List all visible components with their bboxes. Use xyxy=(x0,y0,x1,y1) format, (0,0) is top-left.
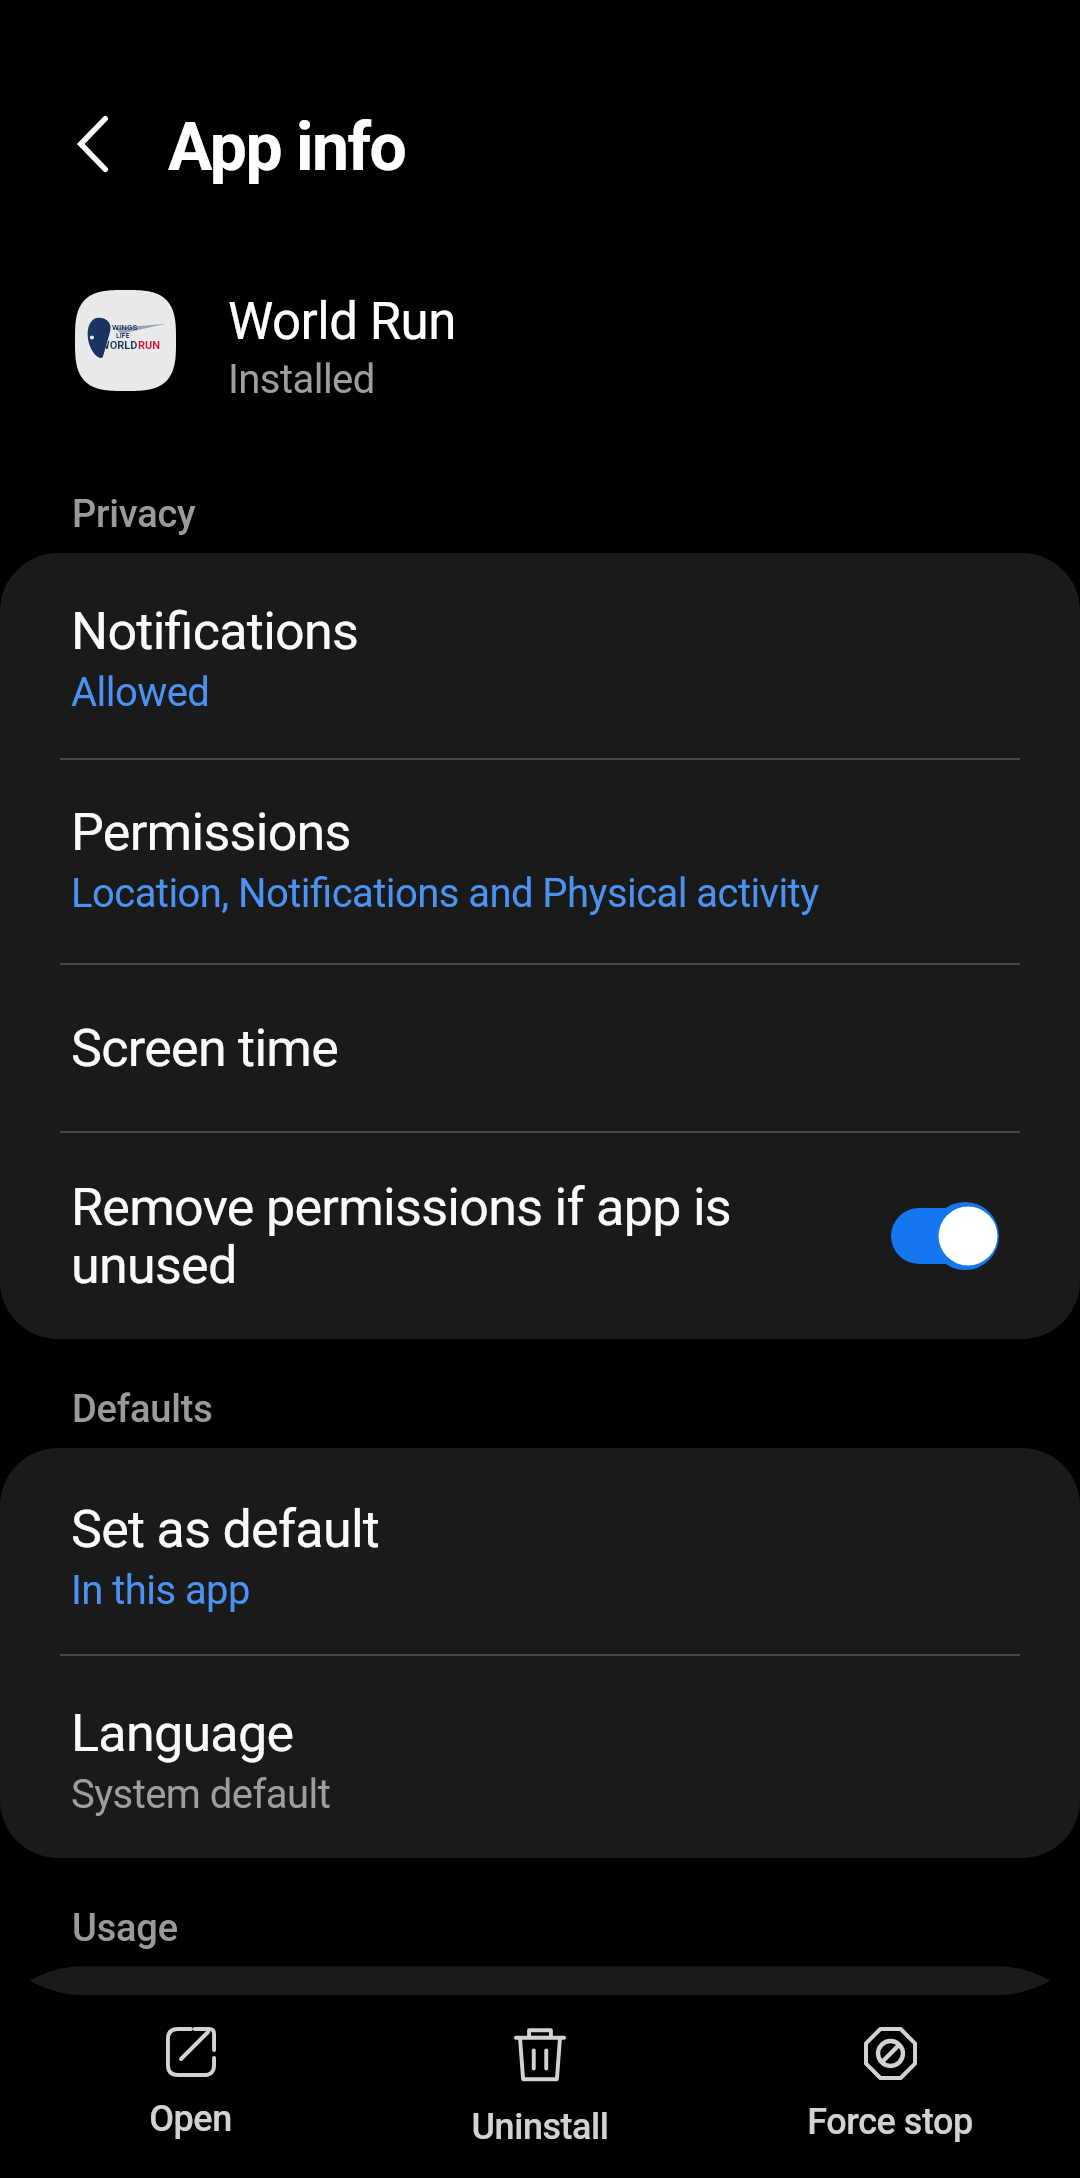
staticText: LIFE xyxy=(116,332,130,340)
staticText: Screen time xyxy=(71,1018,339,1079)
staticText: WINGS xyxy=(112,323,138,332)
button[interactable]: Remove permissions if app is unused xyxy=(0,1133,1080,1339)
staticText: Location, Notifications and Physical act… xyxy=(71,870,819,917)
button[interactable]: Force stop xyxy=(730,2000,1050,2178)
staticText: Open xyxy=(149,2098,232,2140)
staticText: Set as default xyxy=(71,1499,380,1560)
button[interactable]: Screen time xyxy=(0,965,1080,1131)
staticText: Force stop xyxy=(807,2101,973,2143)
staticText: In this app xyxy=(71,1567,250,1614)
button[interactable]: Open xyxy=(30,2000,350,2178)
button[interactable]: Permissions xyxy=(0,760,1080,963)
staticText: App info xyxy=(168,109,406,186)
button[interactable]: Language xyxy=(0,1656,1080,1858)
staticText: Language xyxy=(71,1703,294,1764)
button[interactable]: Uninstall xyxy=(380,2000,700,2178)
staticText: Remove permissions if app is unused xyxy=(71,1177,780,1296)
staticText: Usage xyxy=(72,1906,178,1951)
staticText: RUN xyxy=(138,339,161,352)
staticText: Privacy xyxy=(72,492,196,537)
button[interactable]: Notifications xyxy=(0,553,1080,758)
staticText: System default xyxy=(71,1771,331,1818)
staticText: WORLD xyxy=(100,339,138,352)
staticText: Notifications xyxy=(71,601,359,662)
staticText: Installed xyxy=(228,356,375,403)
staticText: Permissions xyxy=(71,802,351,863)
staticText: Allowed xyxy=(71,669,210,716)
button[interactable]: Navigate up xyxy=(45,96,141,192)
staticText: World Run xyxy=(228,292,456,352)
staticText: Uninstall xyxy=(471,2106,609,2148)
staticText: Defaults xyxy=(72,1387,213,1432)
button[interactable]: Set as default xyxy=(0,1448,1080,1654)
